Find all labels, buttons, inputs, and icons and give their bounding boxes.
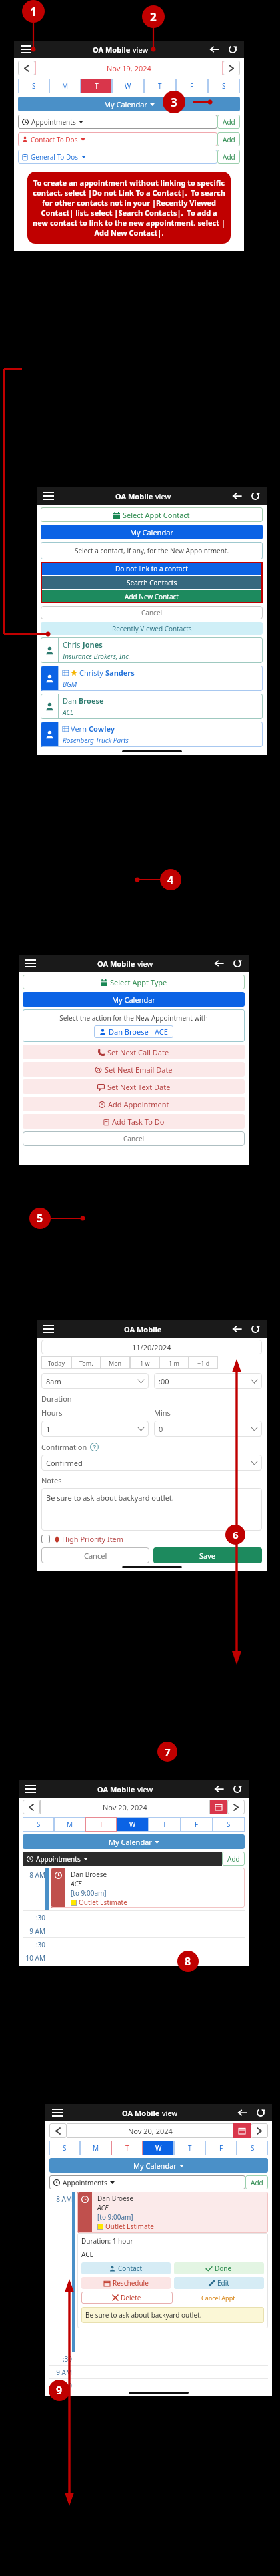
button[interactable]: 1 m xyxy=(159,1356,189,1369)
button[interactable]: Cancel xyxy=(41,1547,149,1563)
button[interactable]: S xyxy=(208,79,240,93)
button[interactable]: Back xyxy=(236,2107,248,2119)
button[interactable]: My Calendar xyxy=(23,992,245,1007)
button[interactable]: Add Task To Do xyxy=(23,1114,245,1129)
button[interactable]: Menu xyxy=(19,44,33,55)
button[interactable]: Refresh xyxy=(249,1323,261,1335)
button[interactable]: T xyxy=(111,2141,143,2155)
button[interactable]: Reschedule xyxy=(81,2277,171,2289)
button[interactable]: Set Next Call Date xyxy=(23,1045,245,1059)
button[interactable]: Menu xyxy=(42,491,55,501)
button[interactable]: Nov 20, 2024 xyxy=(40,1800,210,1814)
button[interactable]: Contact xyxy=(81,2262,171,2274)
button[interactable]: Edit xyxy=(174,2277,264,2289)
button[interactable]: Menu xyxy=(51,2107,64,2118)
button[interactable]: Search Contacts xyxy=(41,576,263,589)
button[interactable]: Cancel Appt xyxy=(173,2294,264,2302)
button[interactable]: F xyxy=(176,79,208,93)
button[interactable]: Refresh xyxy=(227,43,239,55)
button[interactable]: Refresh xyxy=(231,957,243,969)
button[interactable]: 1 w xyxy=(130,1356,159,1369)
button[interactable]: Appointments xyxy=(18,115,217,129)
button[interactable]: Vern xyxy=(41,722,263,747)
button[interactable]: Dan xyxy=(41,694,263,719)
button[interactable]: S xyxy=(237,2141,268,2155)
button[interactable]: Refresh xyxy=(255,2107,267,2119)
button[interactable]: Tom. xyxy=(71,1356,101,1369)
button[interactable]: 1 xyxy=(41,1421,149,1437)
button[interactable]: Save xyxy=(153,1547,262,1563)
button[interactable]: Previous day xyxy=(18,61,35,75)
button[interactable]: Dan Broese xyxy=(51,1868,245,1908)
button[interactable]: 11/20/2024 xyxy=(41,1340,262,1354)
button[interactable]: Do not link to a contact xyxy=(41,562,263,575)
button[interactable]: Today xyxy=(41,1356,71,1369)
button[interactable]: Mon xyxy=(101,1356,130,1369)
button[interactable]: Add xyxy=(222,1852,245,1866)
button[interactable]: Refresh xyxy=(249,490,261,502)
button[interactable]: Set Next Text Date xyxy=(23,1079,245,1094)
button[interactable]: Recently Viewed Contacts xyxy=(41,622,263,635)
button[interactable]: Next day xyxy=(227,1800,245,1814)
button[interactable]: Back xyxy=(231,1323,243,1335)
button[interactable]: +1 d xyxy=(189,1356,218,1369)
button[interactable]: Delete xyxy=(81,2292,173,2304)
button[interactable]: My Calendar xyxy=(23,1834,245,1849)
button[interactable]: Add xyxy=(217,115,240,129)
button[interactable]: W xyxy=(112,79,144,93)
button[interactable]: Next day xyxy=(251,2123,268,2138)
button[interactable]: My Calendar xyxy=(41,525,263,539)
button[interactable]: Menu xyxy=(24,958,37,969)
button[interactable]: S xyxy=(213,1817,245,1832)
button[interactable]: Refresh xyxy=(231,1783,243,1795)
button[interactable]: General To Dos xyxy=(18,150,217,164)
button[interactable]: 8am xyxy=(41,1373,149,1389)
button[interactable]: S xyxy=(18,79,49,93)
button[interactable]: Set Next Email Date xyxy=(23,1062,245,1077)
button[interactable]: Done xyxy=(174,2262,264,2274)
button[interactable]: Menu xyxy=(24,1784,37,1794)
button[interactable]: Cancel xyxy=(41,606,263,619)
button[interactable]: M xyxy=(49,79,81,93)
button[interactable]: Appointments xyxy=(49,2175,245,2189)
button[interactable]: Contact To Dos xyxy=(18,132,217,146)
button[interactable]: Back xyxy=(213,957,225,969)
button[interactable]: Calendar xyxy=(233,2123,251,2138)
button[interactable]: Appointments xyxy=(23,1852,222,1866)
button[interactable]: 0 xyxy=(154,1421,262,1437)
button[interactable]: Previous day xyxy=(23,1800,40,1814)
button[interactable]: W xyxy=(117,1817,149,1832)
button[interactable]: M xyxy=(54,1817,85,1832)
button[interactable]: Dan Broese xyxy=(77,2192,268,2233)
button[interactable]: Add Appointment xyxy=(23,1097,245,1111)
button[interactable]: T xyxy=(85,1817,117,1832)
button[interactable]: Christy xyxy=(41,666,263,691)
button[interactable]: Nov 20, 2024 xyxy=(67,2123,233,2138)
button[interactable]: S xyxy=(23,1817,54,1832)
button[interactable]: Cancel xyxy=(23,1131,245,1146)
button[interactable]: Back xyxy=(213,1783,225,1795)
button[interactable]: High Priority Item xyxy=(41,1534,124,1544)
button[interactable]: Dan Broese - ACE xyxy=(94,1025,173,1038)
button[interactable]: My Calendar xyxy=(49,2158,268,2173)
button[interactable]: Back xyxy=(208,43,220,55)
button[interactable]: W xyxy=(143,2141,174,2155)
button[interactable]: Next day xyxy=(223,61,240,75)
button[interactable]: T xyxy=(174,2141,205,2155)
button[interactable]: Back xyxy=(231,490,243,502)
button[interactable]: Calendar xyxy=(210,1800,227,1814)
button[interactable]: Be sure to ask about backyard outlet. xyxy=(41,1488,262,1531)
button[interactable]: Add xyxy=(217,150,240,164)
button[interactable]: Add New Contact xyxy=(41,590,263,603)
button[interactable]: F xyxy=(181,1817,213,1832)
button[interactable]: Chris xyxy=(41,637,263,663)
button[interactable]: My Calendar xyxy=(18,97,240,111)
button[interactable]: Add xyxy=(217,132,240,146)
button[interactable]: T xyxy=(149,1817,181,1832)
button[interactable]: Select Appt Type xyxy=(23,975,245,989)
button[interactable]: F xyxy=(205,2141,237,2155)
button[interactable]: Previous day xyxy=(49,2123,67,2138)
button[interactable]: Add xyxy=(245,2175,268,2189)
button[interactable]: T xyxy=(81,79,112,93)
button[interactable]: M xyxy=(80,2141,111,2155)
